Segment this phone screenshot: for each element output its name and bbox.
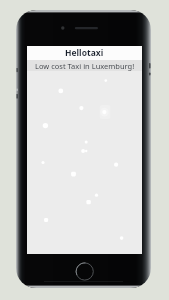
button[interactable]: Home [75, 262, 94, 281]
staticText: Hellotaxi [65, 47, 104, 59]
button[interactable]: Hellotaxi [27, 46, 142, 60]
button[interactable]: Low cost Taxi in Luxemburg! [27, 60, 142, 71]
staticText: Low cost Taxi in Luxemburg! [35, 61, 135, 71]
